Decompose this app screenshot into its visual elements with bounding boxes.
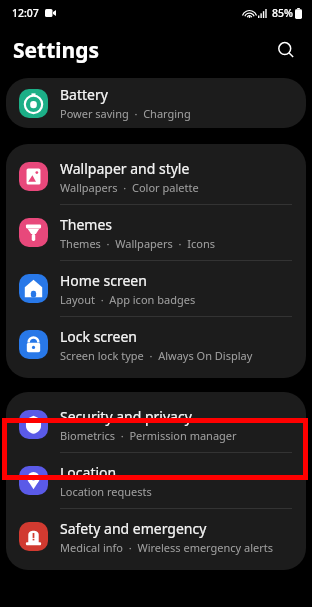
staticText: Screen lock type · Always On Display — [60, 348, 253, 363]
staticText: 85% — [272, 6, 293, 20]
staticText: Lock screen — [60, 327, 138, 346]
staticText: Wallpaper and style — [60, 159, 190, 178]
staticText: Power saving · Charging — [60, 106, 191, 121]
button[interactable]: Wallpaper and style — [6, 149, 306, 204]
button[interactable]: Search — [268, 32, 304, 68]
staticText: Layout · App icon badges — [60, 292, 196, 307]
staticText: Battery — [60, 85, 108, 104]
staticText: Location requests — [60, 484, 152, 499]
staticText: Themes — [60, 215, 113, 234]
staticText: Medical info · Wireless emergency alerts — [60, 540, 274, 555]
button[interactable]: Security and privacy — [6, 397, 306, 452]
button[interactable]: Lock screen — [6, 317, 306, 372]
button[interactable]: Themes — [6, 205, 306, 260]
staticText: Home screen — [60, 271, 147, 290]
button[interactable]: Battery — [6, 78, 306, 128]
staticText: 12:07 — [12, 6, 39, 20]
staticText: Location — [60, 463, 117, 482]
button[interactable]: Home screen — [6, 261, 306, 316]
staticText: Themes · Wallpapers · Icons — [60, 236, 215, 251]
staticText: Wallpapers · Color palette — [60, 180, 199, 195]
button[interactable]: Location — [6, 453, 306, 508]
staticText: Security and privacy — [60, 407, 192, 426]
staticText: Biometrics · Permission manager — [60, 428, 237, 443]
staticText: Settings — [13, 36, 100, 65]
staticText: Safety and emergency — [60, 519, 207, 538]
button[interactable]: Safety and emergency — [6, 509, 306, 564]
